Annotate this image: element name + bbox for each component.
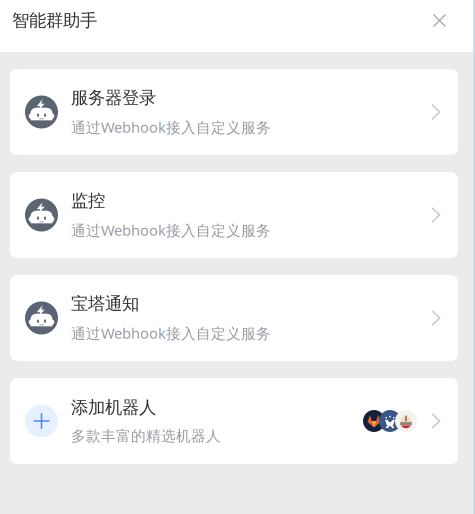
button[interactable]: 添加机器人 [10,378,458,464]
staticText: 添加机器人 [71,397,156,418]
button[interactable]: 监控 [10,172,458,258]
staticText: 监控 [71,190,105,211]
staticText: 智能群助手 [12,10,97,31]
button[interactable]: Close [424,5,455,36]
staticText: 服务器登录 [71,87,156,108]
staticText: 通过Webhook接入自定义服务 [71,220,271,240]
button[interactable]: 服务器登录 [10,69,458,155]
staticText: 通过Webhook接入自定义服务 [71,323,271,343]
staticText: 多款丰富的精选机器人 [71,427,221,445]
button[interactable]: 宝塔通知 [10,275,458,361]
staticText: 通过Webhook接入自定义服务 [71,117,271,137]
staticText: 宝塔通知 [71,293,139,314]
